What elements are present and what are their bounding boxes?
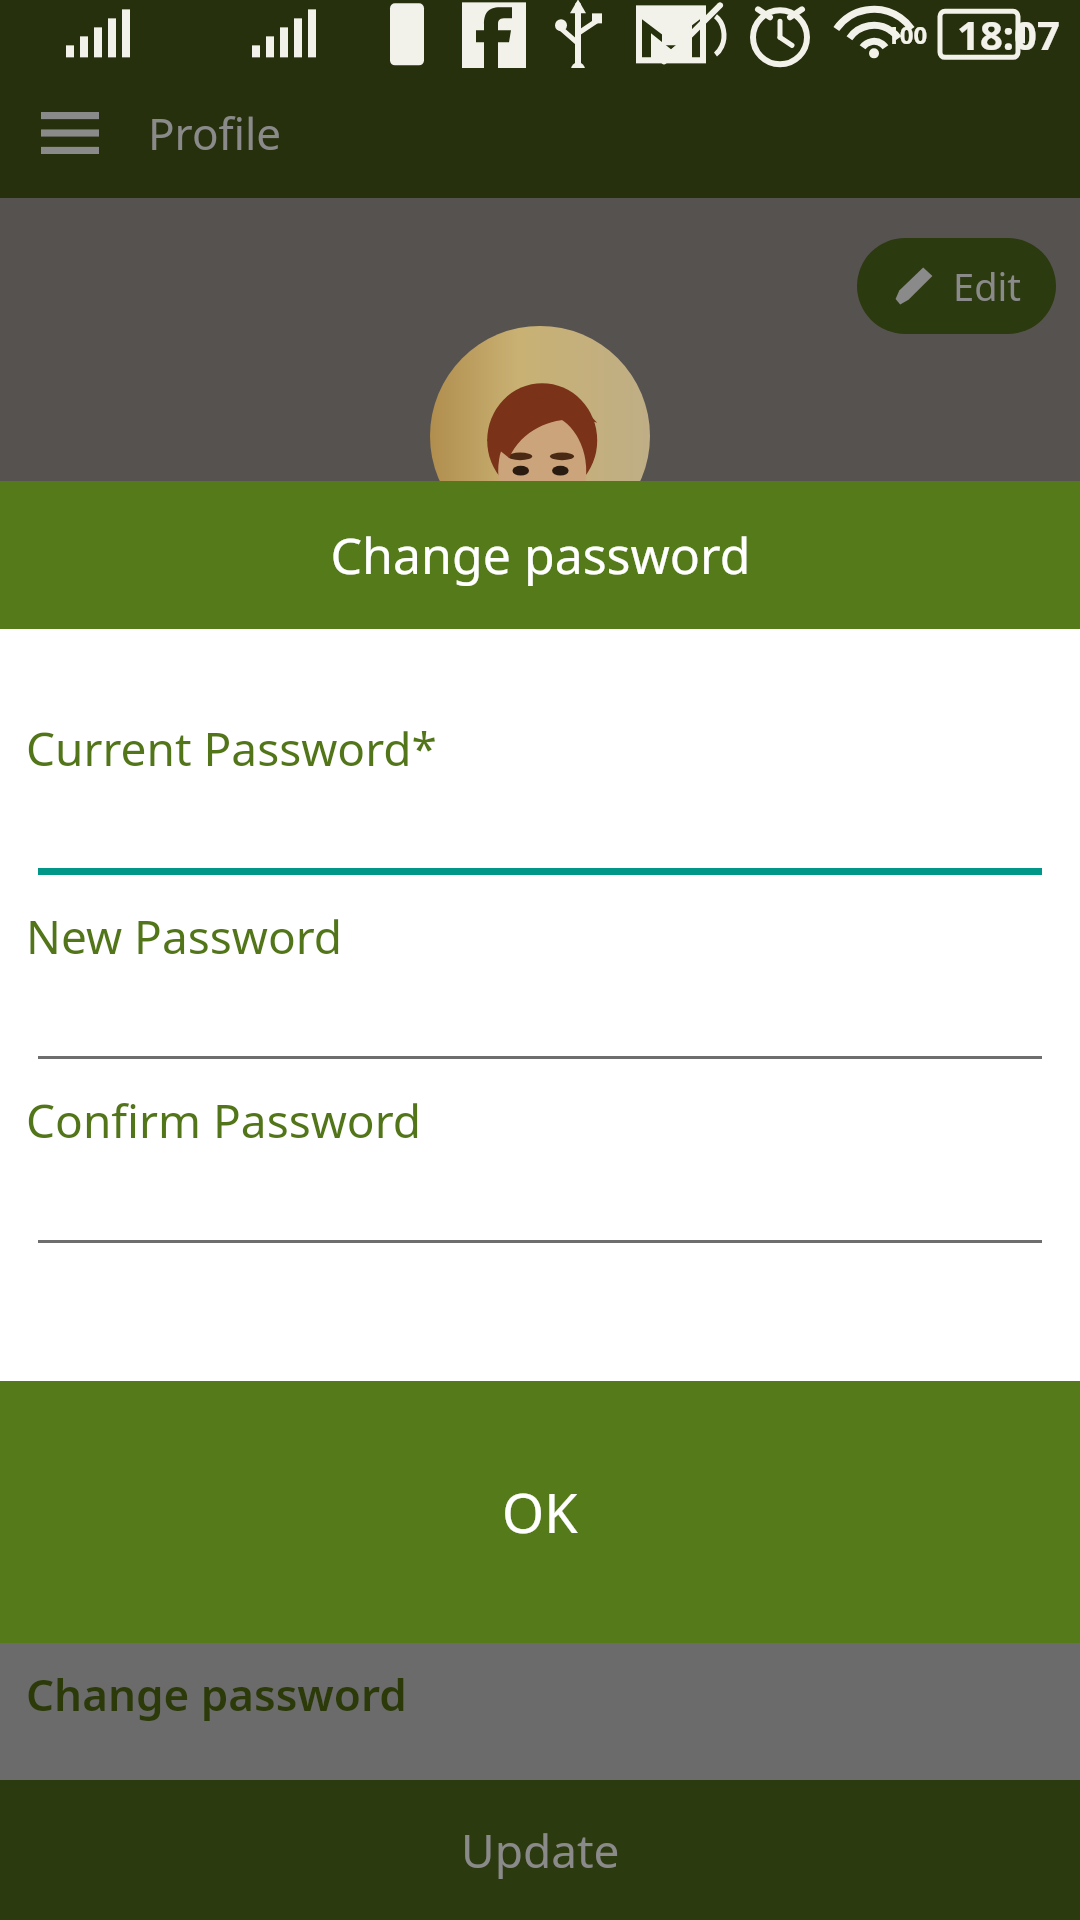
staticText: Current Password* <box>26 717 437 780</box>
button[interactable]: Change password <box>0 1608 1080 1780</box>
button[interactable]: Confirm Password <box>0 1089 1080 1243</box>
staticText: OK <box>502 1475 578 1549</box>
button[interactable]: OK <box>0 1381 1080 1643</box>
staticText: Change password <box>26 1664 407 1724</box>
button[interactable]: Edit <box>857 238 1056 334</box>
button[interactable]: Update <box>0 1780 1080 1920</box>
staticText: Update <box>461 1819 620 1882</box>
button[interactable]: Address <box>0 1502 1080 1606</box>
button[interactable]: Current Password* <box>0 717 1080 875</box>
button[interactable]: New Password <box>0 905 1080 1059</box>
staticText: 100 <box>886 18 928 51</box>
staticText: 18:07 <box>957 7 1060 61</box>
button[interactable]: Open navigation menu <box>34 97 106 169</box>
staticText: New Password <box>26 905 343 968</box>
staticText: Change password <box>330 521 751 589</box>
staticText: Edit <box>953 260 1022 312</box>
staticText: Profile <box>148 103 282 163</box>
staticText: Confirm Password <box>26 1089 422 1152</box>
